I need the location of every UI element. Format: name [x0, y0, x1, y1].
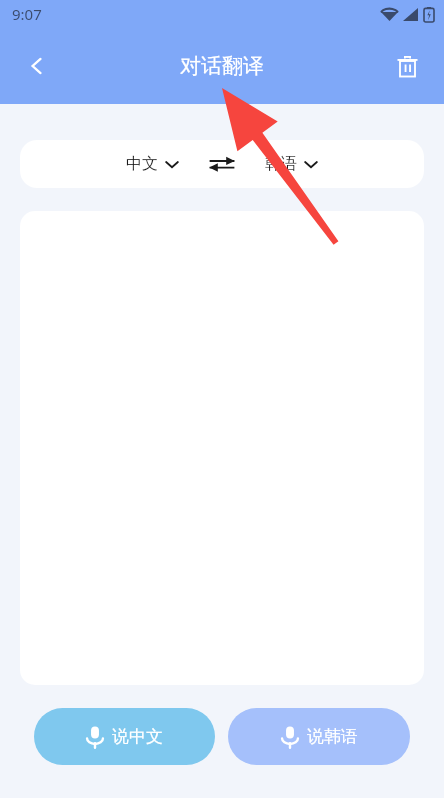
button[interactable]: 中文 [122, 150, 183, 178]
button[interactable]: Back [16, 45, 58, 87]
button[interactable]: 说韩语 [228, 708, 410, 765]
staticText: 韩语 [265, 154, 297, 174]
staticText: 说韩语 [307, 726, 358, 747]
button[interactable]: Delete conversation [386, 45, 428, 87]
staticText: 对话翻译 [180, 53, 264, 79]
staticText: 9:07 [12, 4, 42, 24]
staticText: 中文 [126, 154, 158, 174]
button[interactable]: 韩语 [261, 150, 322, 178]
button[interactable]: 说中文 [34, 708, 215, 765]
staticText: 说中文 [112, 726, 163, 747]
button[interactable]: Swap languages [205, 147, 239, 181]
